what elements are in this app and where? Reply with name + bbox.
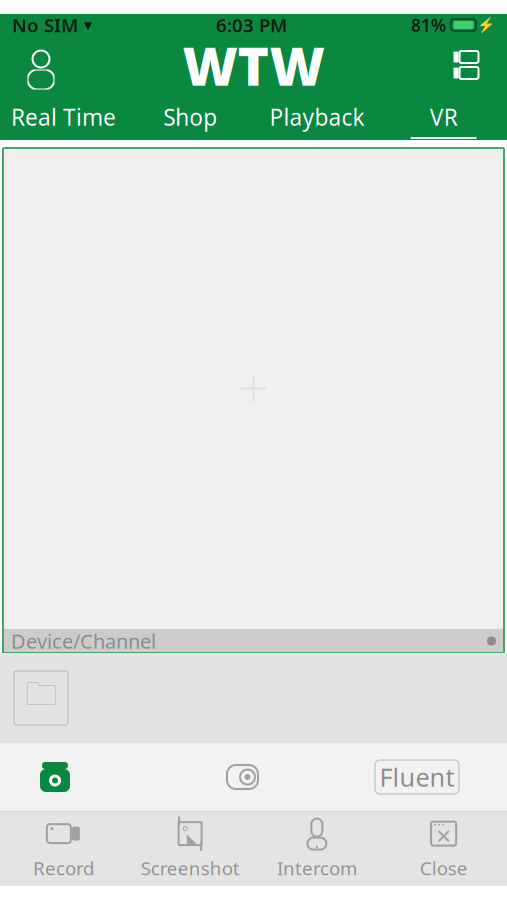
staticText: ✕ xyxy=(435,825,452,848)
staticText: Device/Channel xyxy=(11,628,156,654)
button[interactable]: Intercom xyxy=(253,813,380,885)
staticText: ▾ xyxy=(84,16,92,34)
staticText: Real Time xyxy=(11,102,116,132)
button[interactable]: VR xyxy=(380,95,507,139)
staticText: Playback xyxy=(269,102,364,132)
button[interactable]: Real Time xyxy=(0,95,127,139)
button[interactable]: Lens xyxy=(110,750,375,804)
staticText: 🗀 xyxy=(25,671,57,724)
button[interactable]: Add device xyxy=(14,671,68,725)
staticText: WTW xyxy=(182,30,324,100)
staticText: 81% xyxy=(411,13,446,36)
staticText: No SIM xyxy=(12,13,78,37)
staticText: VR xyxy=(430,102,458,132)
staticText: 6:03 PM xyxy=(216,13,287,37)
staticText: Screenshot xyxy=(141,856,240,880)
button[interactable]: Camera xyxy=(0,750,110,804)
staticText: Record xyxy=(33,856,94,880)
button[interactable]: Playback xyxy=(253,95,380,139)
staticText: Shop xyxy=(163,102,217,132)
button[interactable]: Record xyxy=(0,813,127,885)
staticText: Intercom xyxy=(277,856,357,880)
staticText: ⚡ xyxy=(477,17,495,33)
button[interactable]: ◣ xyxy=(127,813,254,885)
staticText: Fluent xyxy=(379,760,454,794)
staticText: ◣ xyxy=(187,830,198,847)
button[interactable]: Device list xyxy=(439,39,493,91)
button[interactable]: Account xyxy=(14,39,68,91)
button[interactable]: Fluent xyxy=(375,760,459,794)
staticText: Close xyxy=(420,856,468,880)
button[interactable]: ✕ xyxy=(380,813,507,885)
button[interactable]: Shop xyxy=(127,95,254,139)
